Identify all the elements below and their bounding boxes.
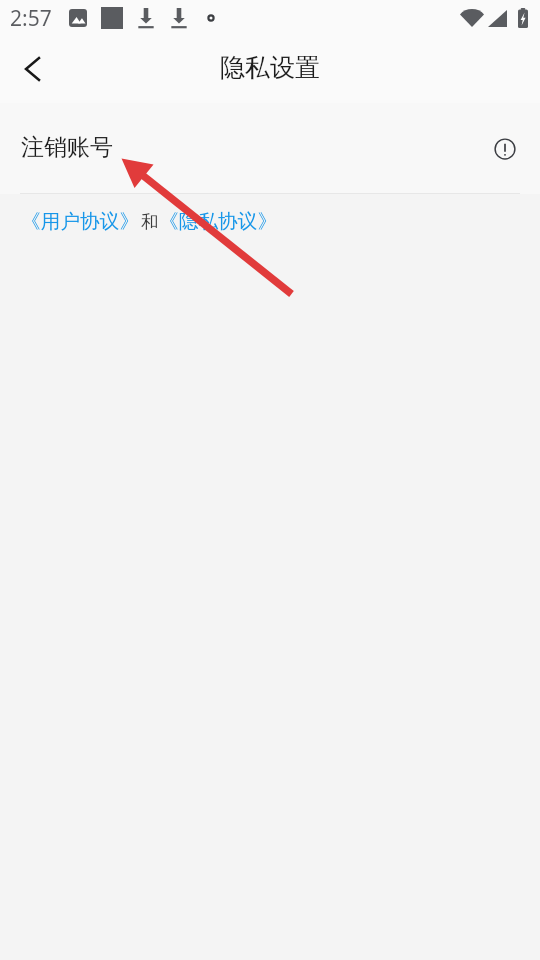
staticText: 《隐私协议》 [159, 209, 278, 234]
button[interactable]: 《隐私协议》 [159, 209, 278, 234]
staticText: 2:57 [10, 4, 52, 33]
staticText: 注销账号 [21, 133, 113, 162]
button[interactable]: 注销账号 [0, 103, 540, 194]
button[interactable]: Back [0, 39, 62, 101]
button[interactable]: Account info [488, 132, 522, 166]
staticText: 隐私设置 [220, 52, 320, 83]
button[interactable]: 《用户协议》 [21, 209, 140, 234]
staticText: 和 [141, 211, 159, 233]
staticText: 《用户协议》 [21, 209, 140, 234]
